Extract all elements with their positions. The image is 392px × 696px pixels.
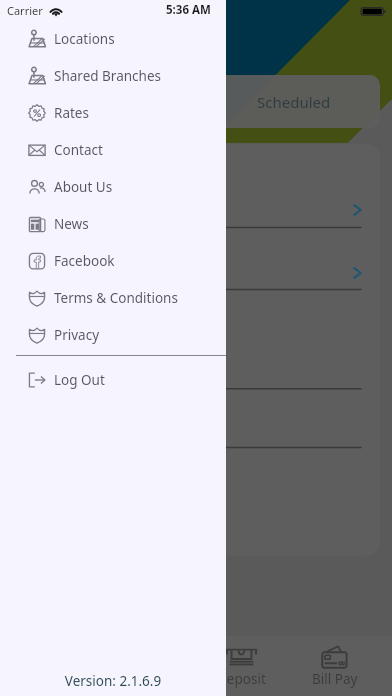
button[interactable]: Log Out	[0, 361, 226, 398]
button[interactable]: Facebook	[0, 242, 226, 279]
staticText: Facebook	[54, 252, 115, 270]
staticText: Carrier	[7, 3, 43, 18]
button[interactable]: Bill Pay	[288, 643, 381, 688]
button[interactable]: Rates	[0, 94, 226, 131]
button[interactable]: Deposit	[195, 643, 288, 688]
staticText: Locations	[54, 30, 115, 48]
button[interactable]: About Us	[0, 168, 226, 205]
staticText: About Us	[54, 178, 113, 196]
button[interactable]: Locations	[0, 20, 226, 57]
button[interactable]: Privacy	[0, 316, 226, 353]
staticText: Home	[38, 670, 77, 688]
staticText: Terms & Conditions	[54, 289, 178, 307]
staticText: Bill Pay	[312, 670, 358, 688]
staticText: Accounts	[120, 670, 178, 688]
staticText: Version: 2.1.6.9	[0, 672, 226, 690]
button[interactable]: Terms & Conditions	[0, 279, 226, 316]
staticText: 5:36 AM	[166, 2, 211, 18]
staticText: Rates	[54, 104, 89, 122]
staticText: Contact	[54, 141, 103, 159]
staticText: Shared Branches	[54, 67, 161, 85]
staticText: Scheduled	[257, 92, 331, 112]
button[interactable]: Accounts	[103, 643, 195, 688]
button[interactable]: Home	[11, 643, 103, 688]
staticText: News	[54, 215, 89, 233]
button[interactable]: News	[0, 205, 226, 242]
staticText: Deposit	[217, 670, 266, 688]
staticText: Privacy	[54, 326, 100, 344]
staticText: Log Out	[54, 371, 105, 389]
button[interactable]: Shared Branches	[0, 57, 226, 94]
button[interactable]: Contact	[0, 131, 226, 168]
